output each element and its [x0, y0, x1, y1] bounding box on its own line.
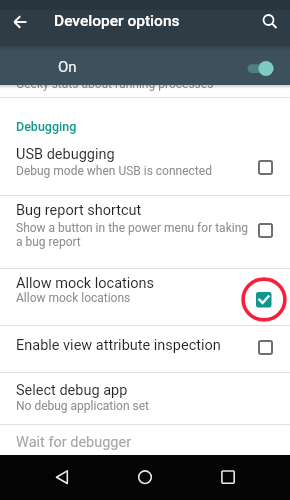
staticText: On: [58, 58, 77, 76]
button[interactable]: Wait for debugger: [0, 425, 290, 455]
button[interactable]: On: [0, 46, 290, 85]
staticText: Enable view attribute inspection: [16, 337, 221, 354]
button[interactable]: [253, 5, 285, 37]
staticText: Show a button in the power menu for taki…: [16, 221, 248, 249]
staticText: Debugging: [16, 119, 77, 134]
button[interactable]: Enable view attribute inspection: [0, 326, 290, 372]
button[interactable]: [130, 462, 160, 492]
staticText: Debug mode when USB is connected: [16, 164, 212, 178]
staticText: No debug application set: [16, 399, 150, 413]
button[interactable]: Select debug app: [0, 373, 290, 424]
staticText: Developer options: [54, 12, 180, 30]
button[interactable]: [213, 462, 243, 492]
button[interactable]: [6, 7, 36, 37]
button[interactable]: Bug report shortcut: [0, 196, 290, 268]
staticText: Allow mock locations: [16, 291, 131, 305]
button[interactable]: USB debugging: [0, 140, 290, 195]
staticText: Geeky stats about running processes: [16, 77, 214, 91]
staticText: Wait for debugger: [16, 434, 132, 451]
button[interactable]: Allow mock locations: [0, 269, 290, 325]
staticText: Bug report shortcut: [16, 202, 142, 219]
button[interactable]: [47, 462, 77, 492]
staticText: Select debug app: [16, 382, 128, 399]
staticText: Allow mock locations: [16, 275, 155, 292]
staticText: USB debugging: [16, 146, 115, 163]
